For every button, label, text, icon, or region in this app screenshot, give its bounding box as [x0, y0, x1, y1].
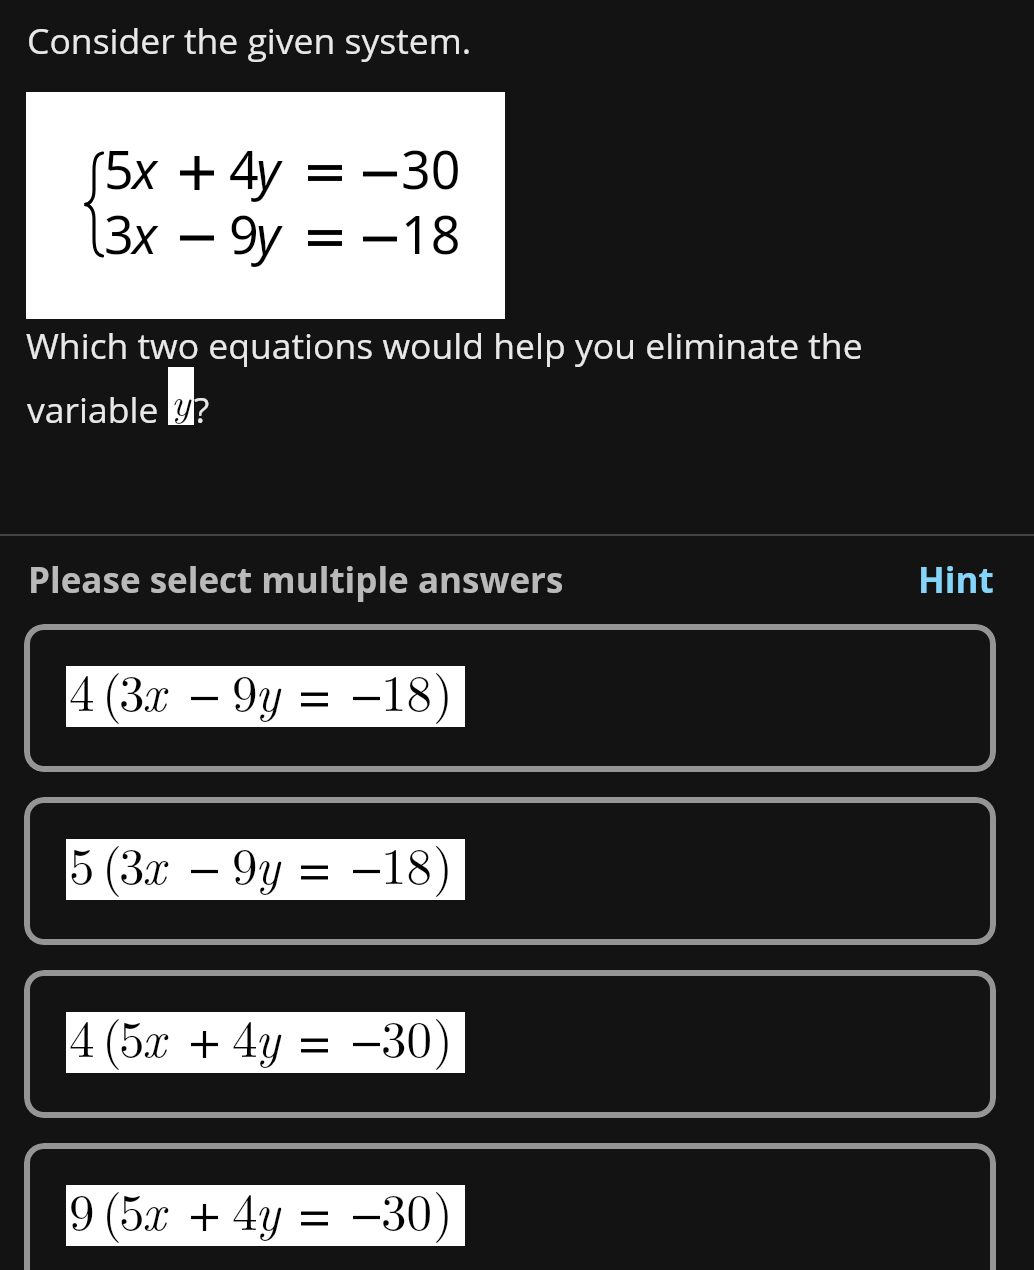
staticText: variable: [27, 385, 168, 433]
staticText: 30: [401, 133, 461, 204]
staticText: ): [433, 1173, 453, 1245]
staticText: 5: [104, 133, 134, 204]
staticText: (: [102, 1173, 122, 1245]
staticText: x: [132, 198, 158, 269]
staticText: 3: [119, 827, 145, 899]
staticText: 18: [401, 198, 461, 269]
staticText: y: [255, 827, 280, 899]
button[interactable]: Hint: [918, 556, 994, 604]
staticText: 5: [69, 827, 95, 899]
button[interactable]: 5: [24, 797, 996, 945]
staticText: 3: [104, 198, 134, 269]
staticText: ): [433, 654, 453, 726]
staticText: x: [132, 133, 158, 204]
staticText: y: [255, 654, 280, 726]
staticText: 5: [119, 1173, 145, 1245]
staticText: y: [256, 133, 281, 204]
staticText: 18: [381, 827, 433, 899]
staticText: Hint: [918, 556, 994, 604]
staticText: (: [102, 1000, 122, 1072]
staticText: 4: [69, 1000, 95, 1072]
staticText: 4: [232, 1173, 258, 1245]
staticText: x: [142, 1000, 166, 1072]
staticText: 9: [232, 827, 258, 899]
staticText: 4: [69, 654, 95, 726]
staticText: 30: [381, 1000, 433, 1072]
staticText: y: [255, 1173, 280, 1245]
staticText: 30: [381, 1173, 433, 1245]
staticText: 4: [232, 1000, 258, 1072]
staticText: y: [171, 371, 191, 428]
staticText: Consider the given system.: [27, 16, 472, 64]
staticText: 3: [119, 654, 145, 726]
staticText: 5: [119, 1000, 145, 1072]
staticText: 9: [69, 1173, 95, 1245]
staticText: y: [256, 198, 281, 269]
staticText: (: [102, 827, 122, 899]
staticText: (: [102, 654, 122, 726]
button[interactable]: 4: [24, 970, 996, 1118]
staticText: x: [142, 827, 166, 899]
staticText: 9: [232, 654, 258, 726]
staticText: ?: [194, 385, 210, 433]
staticText: Please select multiple answers: [28, 556, 564, 604]
staticText: 4: [229, 133, 259, 204]
staticText: ): [433, 1000, 453, 1072]
staticText: y: [255, 1000, 280, 1072]
button[interactable]: 9: [24, 1143, 996, 1270]
staticText: 18: [381, 654, 433, 726]
staticText: x: [142, 1173, 166, 1245]
staticText: 9: [229, 198, 259, 269]
staticText: x: [142, 654, 166, 726]
button[interactable]: 4: [24, 624, 996, 772]
staticText: Which two equations would help you elimi…: [26, 321, 863, 369]
staticText: ): [433, 827, 453, 899]
